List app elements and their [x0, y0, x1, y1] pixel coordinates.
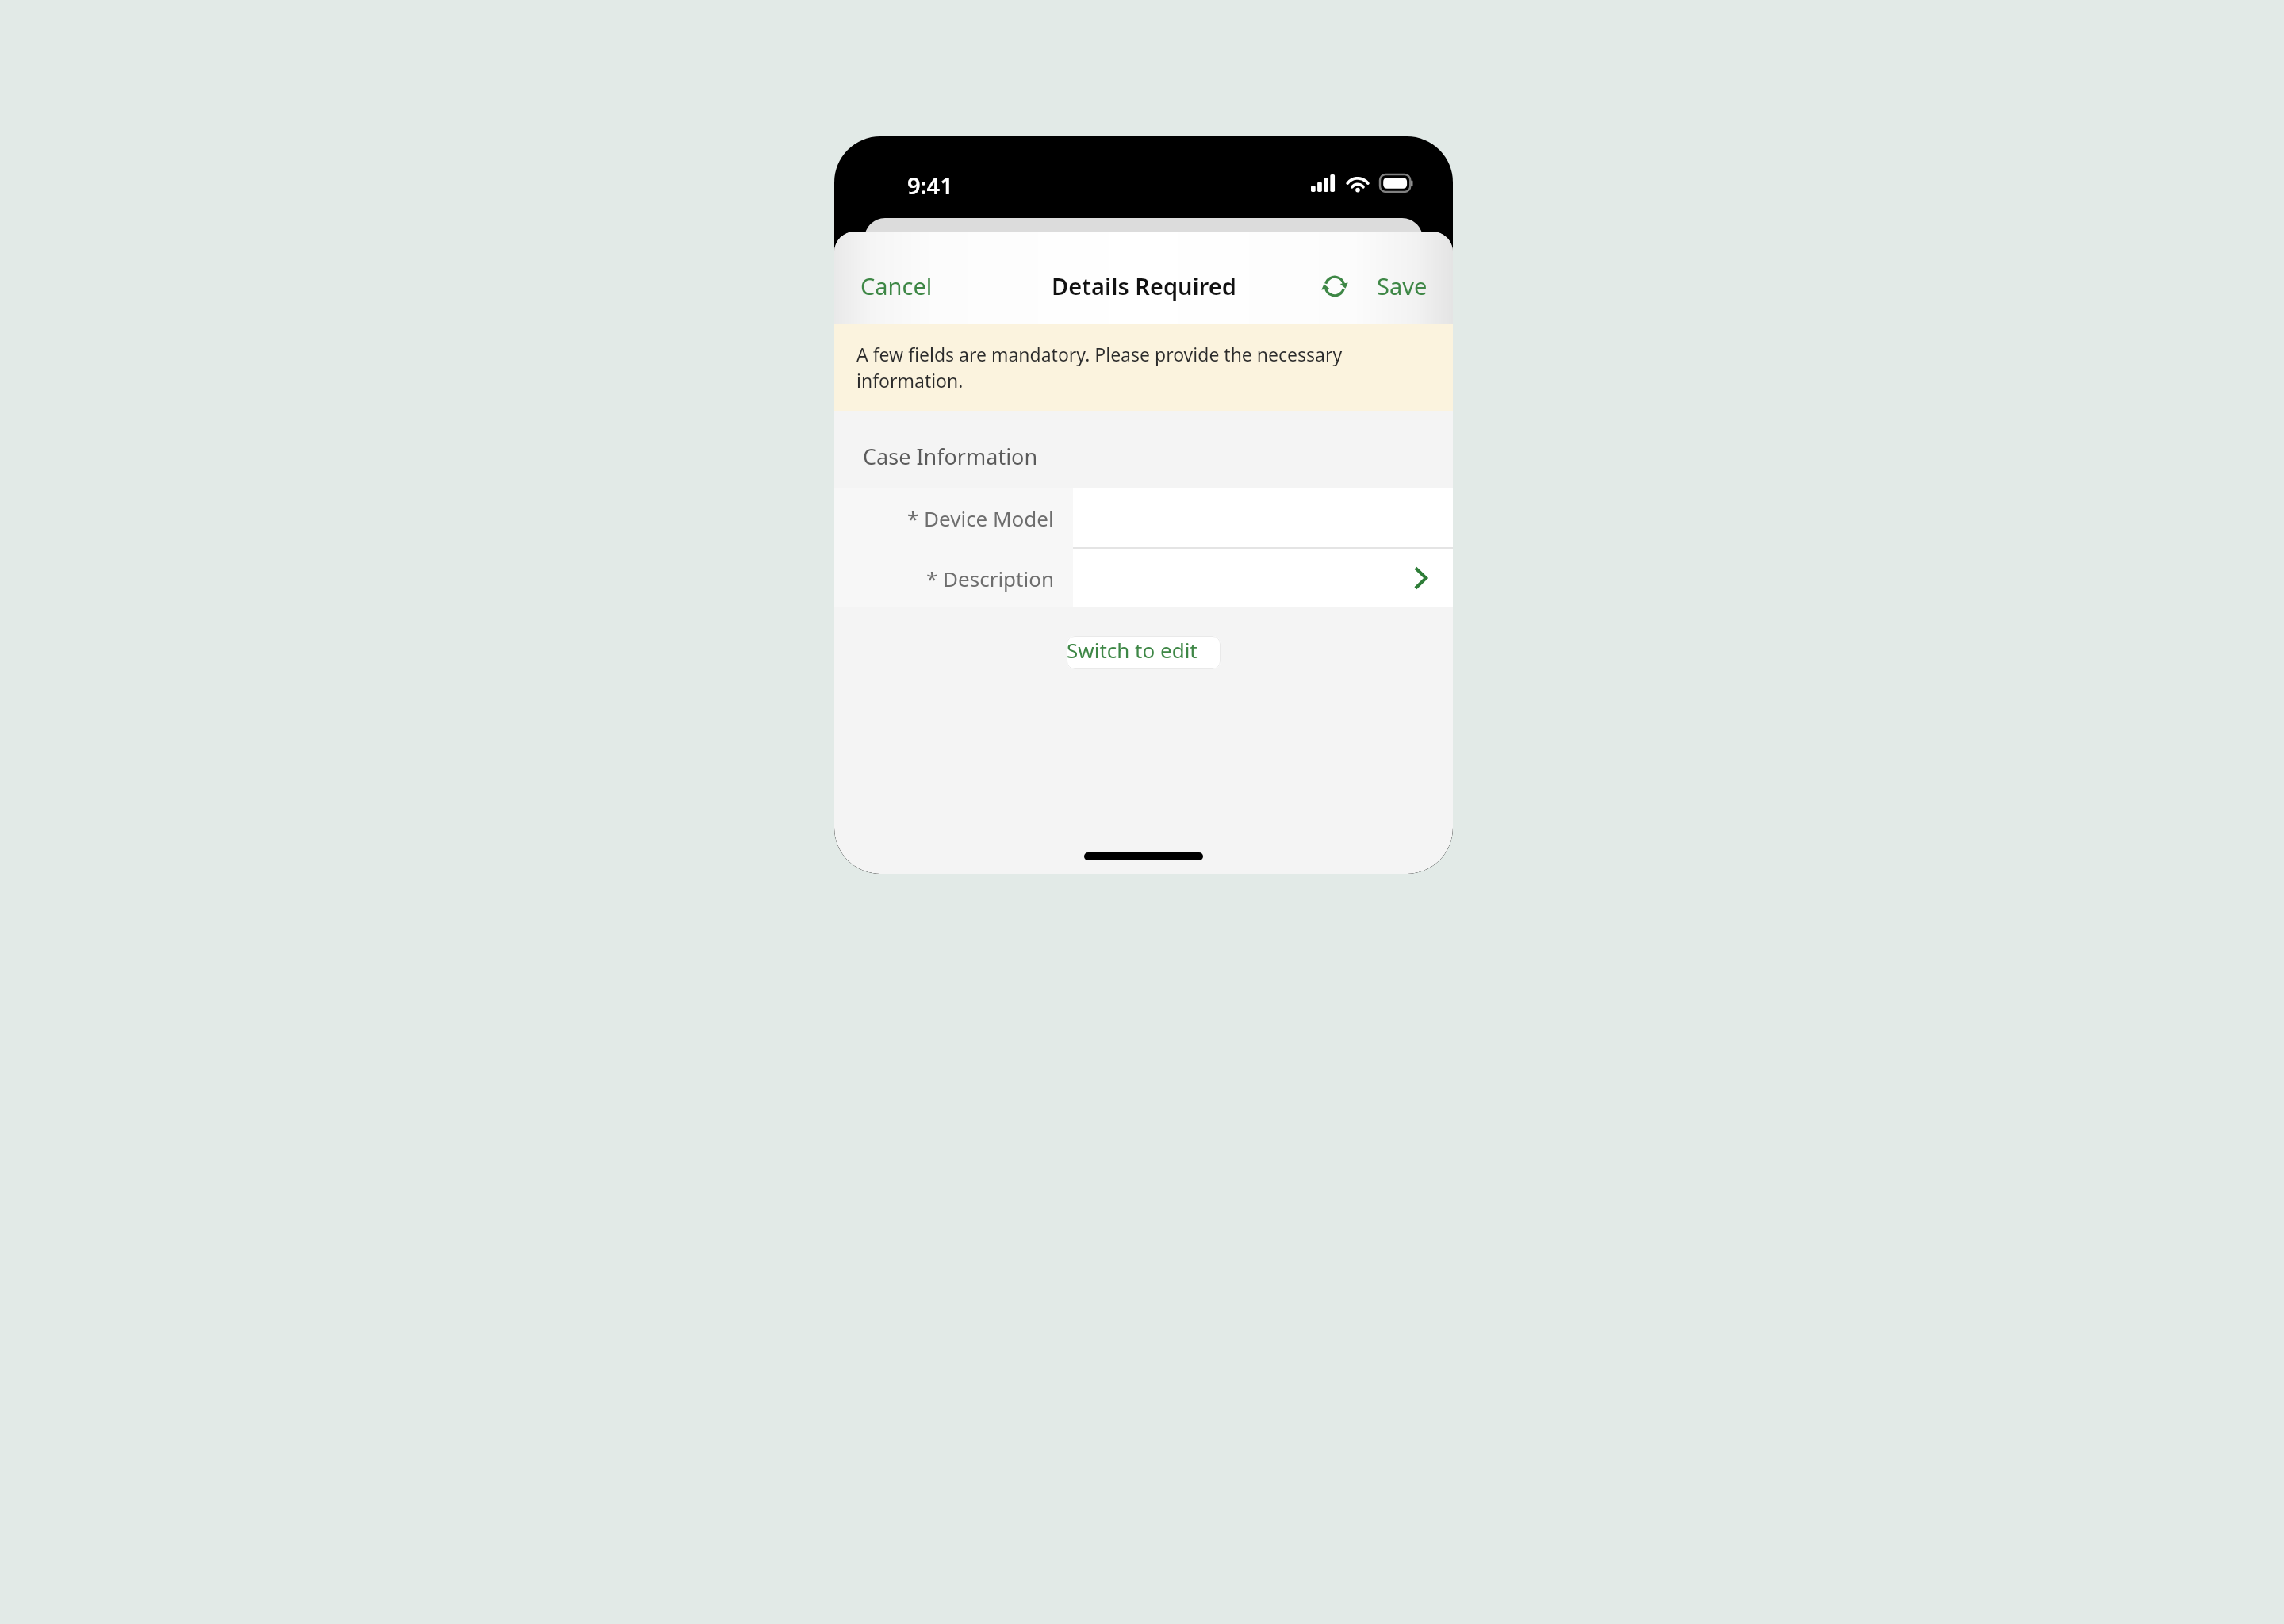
button[interactable]: Switch to edit page: [1067, 636, 1221, 669]
staticText: Case Information: [863, 442, 1038, 471]
button[interactable]: Cancel: [834, 259, 959, 312]
staticText: * Device Model: [907, 504, 1054, 532]
button[interactable]: * Description: [834, 549, 1453, 607]
button[interactable]: Save: [1359, 259, 1453, 312]
staticText: * Description: [926, 565, 1054, 592]
button[interactable]: * Device Model: [834, 488, 1453, 547]
staticText: Switch to edit page: [1067, 636, 1221, 669]
staticText: 9:41: [907, 170, 953, 201]
button[interactable]: Refresh: [1310, 262, 1359, 311]
staticText: A few fields are mandatory. Please provi…: [856, 342, 1420, 393]
staticText: Details Required: [1052, 270, 1236, 301]
